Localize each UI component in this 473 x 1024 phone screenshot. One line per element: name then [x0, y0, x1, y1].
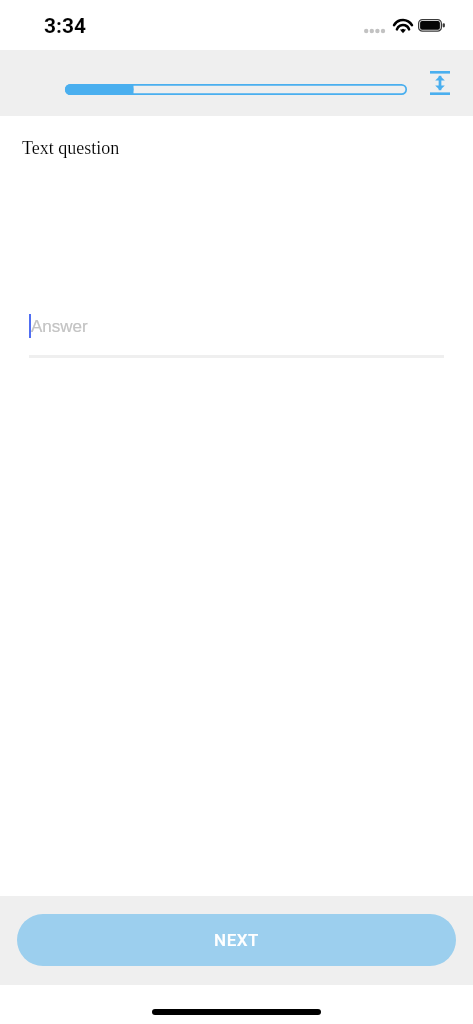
staticText: Answer	[31, 317, 88, 336]
staticText: NEXT	[214, 930, 259, 950]
button[interactable]: NEXT	[17, 914, 456, 966]
staticText: 3:34	[44, 14, 87, 39]
staticText: Text question	[22, 138, 120, 158]
button[interactable]: Adjust height	[424, 59, 456, 107]
button[interactable]: Answer	[29, 309, 444, 358]
